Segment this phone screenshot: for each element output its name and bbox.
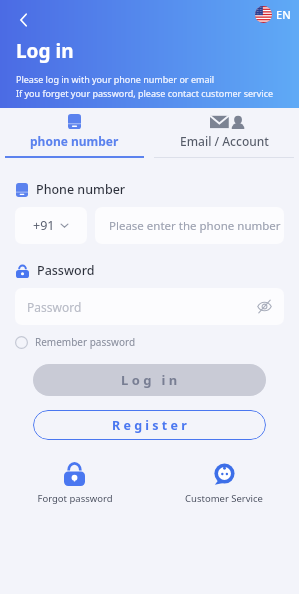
other: Language [255, 6, 272, 23]
staticText: Customer Service [185, 492, 263, 505]
staticText: +91 [33, 217, 55, 234]
staticText: R e g i s t e r [112, 417, 187, 434]
staticText: Log in [16, 38, 74, 64]
button[interactable]: Email / Account [149, 108, 299, 165]
staticText: L o g i n [121, 371, 178, 389]
button[interactable]: Back [8, 4, 40, 36]
button[interactable]: L o g i n [33, 364, 266, 396]
staticText: Password [27, 299, 257, 315]
staticText: Email / Account [180, 133, 269, 149]
button[interactable]: Language [255, 6, 291, 23]
staticText: phone number [30, 133, 119, 149]
staticText: Phone number [36, 181, 126, 198]
button[interactable]: Please enter the phone number [95, 207, 284, 244]
button[interactable]: +91 [15, 207, 87, 244]
button[interactable]: Password [15, 288, 284, 325]
staticText: If you forget your password, please cont… [16, 87, 274, 99]
staticText: EN [276, 7, 291, 22]
button[interactable]: Remember password [15, 335, 136, 349]
staticText: Please enter the phone number [109, 218, 281, 234]
other: Select country code [60, 221, 69, 230]
button[interactable]: Forgot password [0, 462, 149, 505]
staticText: Remember password [35, 335, 136, 349]
button[interactable]: R e g i s t e r [33, 410, 266, 440]
staticText: Forgot password [37, 492, 113, 505]
button[interactable]: phone number [0, 108, 149, 165]
button[interactable]: Customer Service [149, 462, 299, 505]
staticText: Please log in with your phone number or … [16, 73, 215, 85]
button[interactable]: Show password [257, 299, 272, 314]
staticText: Password [37, 262, 95, 279]
